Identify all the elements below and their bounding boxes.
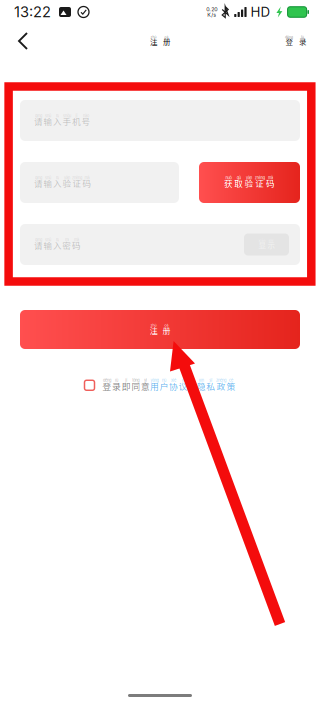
staticText: tóng: [132, 378, 139, 383]
staticText: shū: [45, 237, 51, 242]
staticText: xié: [171, 378, 176, 383]
staticText: yì: [182, 378, 185, 383]
staticText: 证: [72, 177, 81, 189]
staticText: 意: [141, 380, 150, 392]
staticText: K/s: [207, 11, 216, 18]
staticText: qǐng: [35, 237, 42, 242]
staticText: 输: [43, 239, 52, 251]
staticText: qǐng: [35, 175, 42, 180]
staticText: 及: [188, 380, 197, 392]
staticText: mǎ: [268, 175, 273, 180]
button[interactable]: Agree to terms: [84, 380, 94, 390]
staticText: 验: [244, 177, 253, 189]
staticText: shū: [45, 175, 51, 180]
staticText: zhù: [150, 323, 156, 327]
staticText: 入: [53, 239, 62, 251]
staticText: yàn: [246, 175, 252, 180]
staticText: 请: [34, 115, 43, 127]
staticText: 13:22: [14, 3, 51, 21]
staticText: shǒu: [63, 113, 71, 118]
staticText: 用: [150, 380, 159, 392]
staticText: lù: [115, 378, 118, 383]
staticText: yì: [144, 378, 147, 383]
staticText: 隐: [197, 380, 206, 392]
staticText: zhèng: [255, 175, 265, 180]
staticText: qǐng: [35, 113, 42, 118]
staticText: 登: [285, 36, 292, 47]
staticText: 显: [258, 240, 265, 250]
staticText: 示: [267, 240, 274, 250]
staticText: 注: [150, 36, 157, 47]
staticText: 议: [179, 380, 188, 392]
button[interactable]: Back: [6, 24, 42, 58]
staticText: 录: [112, 380, 121, 392]
staticText: 输: [43, 177, 52, 189]
staticText: dēng: [285, 35, 293, 39]
button[interactable]: dēng: [285, 24, 306, 58]
staticText: 策: [226, 380, 235, 392]
staticText: 册: [163, 36, 170, 47]
staticText: yǐn: [199, 378, 204, 383]
staticText: 同: [131, 380, 140, 392]
button[interactable]: huò: [199, 162, 300, 203]
staticText: mì: [65, 237, 69, 242]
staticText: HD: [251, 4, 271, 20]
staticText: 登: [102, 380, 111, 392]
staticText: mǎ: [84, 175, 89, 180]
staticText: 验: [62, 177, 71, 189]
staticText: mǎ: [74, 237, 79, 242]
staticText: 即: [122, 380, 131, 392]
staticText: 码: [82, 177, 91, 189]
staticText: 密: [62, 239, 71, 251]
staticText: 0.20: [206, 6, 217, 12]
staticText: 册: [162, 324, 170, 336]
staticText: huò: [225, 175, 231, 180]
staticText: 证: [255, 177, 264, 189]
staticText: 码: [266, 177, 275, 189]
button[interactable]: yǐn: [197, 378, 235, 392]
staticText: jī: [75, 113, 77, 118]
staticText: 手: [62, 115, 71, 127]
staticText: hào: [83, 113, 89, 118]
staticText: 私: [206, 380, 215, 392]
staticText: cè: [164, 35, 168, 39]
staticText: cè: [164, 323, 168, 327]
staticText: hù: [162, 378, 166, 383]
staticText: 户: [159, 380, 168, 392]
staticText: yàn: [64, 175, 70, 180]
staticText: shū: [45, 113, 51, 118]
staticText: 输: [43, 115, 52, 127]
staticText: 注: [149, 324, 157, 336]
staticText: zhù: [150, 35, 156, 39]
staticText: 入: [53, 177, 62, 189]
staticText: 码: [72, 239, 81, 251]
staticText: 协: [169, 380, 178, 392]
staticText: rù: [56, 113, 59, 118]
staticText: 机: [72, 115, 81, 127]
staticText: cè: [229, 378, 233, 383]
staticText: rù: [56, 237, 59, 242]
button[interactable]: yòng: [150, 378, 188, 392]
staticText: 政: [216, 380, 225, 392]
staticText: 请: [34, 177, 43, 189]
button[interactable]: zhù: [20, 310, 300, 349]
staticText: zhèng: [216, 378, 226, 383]
staticText: yòng: [150, 378, 158, 383]
staticText: lù: [301, 35, 304, 39]
staticText: 请: [34, 239, 43, 251]
staticText: sī: [209, 378, 212, 383]
staticText: 录: [299, 36, 306, 47]
staticText: 取: [234, 177, 243, 189]
staticText: jí: [125, 378, 127, 383]
staticText: dēng: [103, 378, 111, 383]
staticText: zhèng: [72, 175, 82, 180]
staticText: 获: [224, 177, 233, 189]
staticText: 号: [81, 115, 90, 127]
staticText: qǔ: [237, 175, 241, 180]
staticText: 入: [53, 115, 62, 127]
staticText: rù: [56, 175, 59, 180]
